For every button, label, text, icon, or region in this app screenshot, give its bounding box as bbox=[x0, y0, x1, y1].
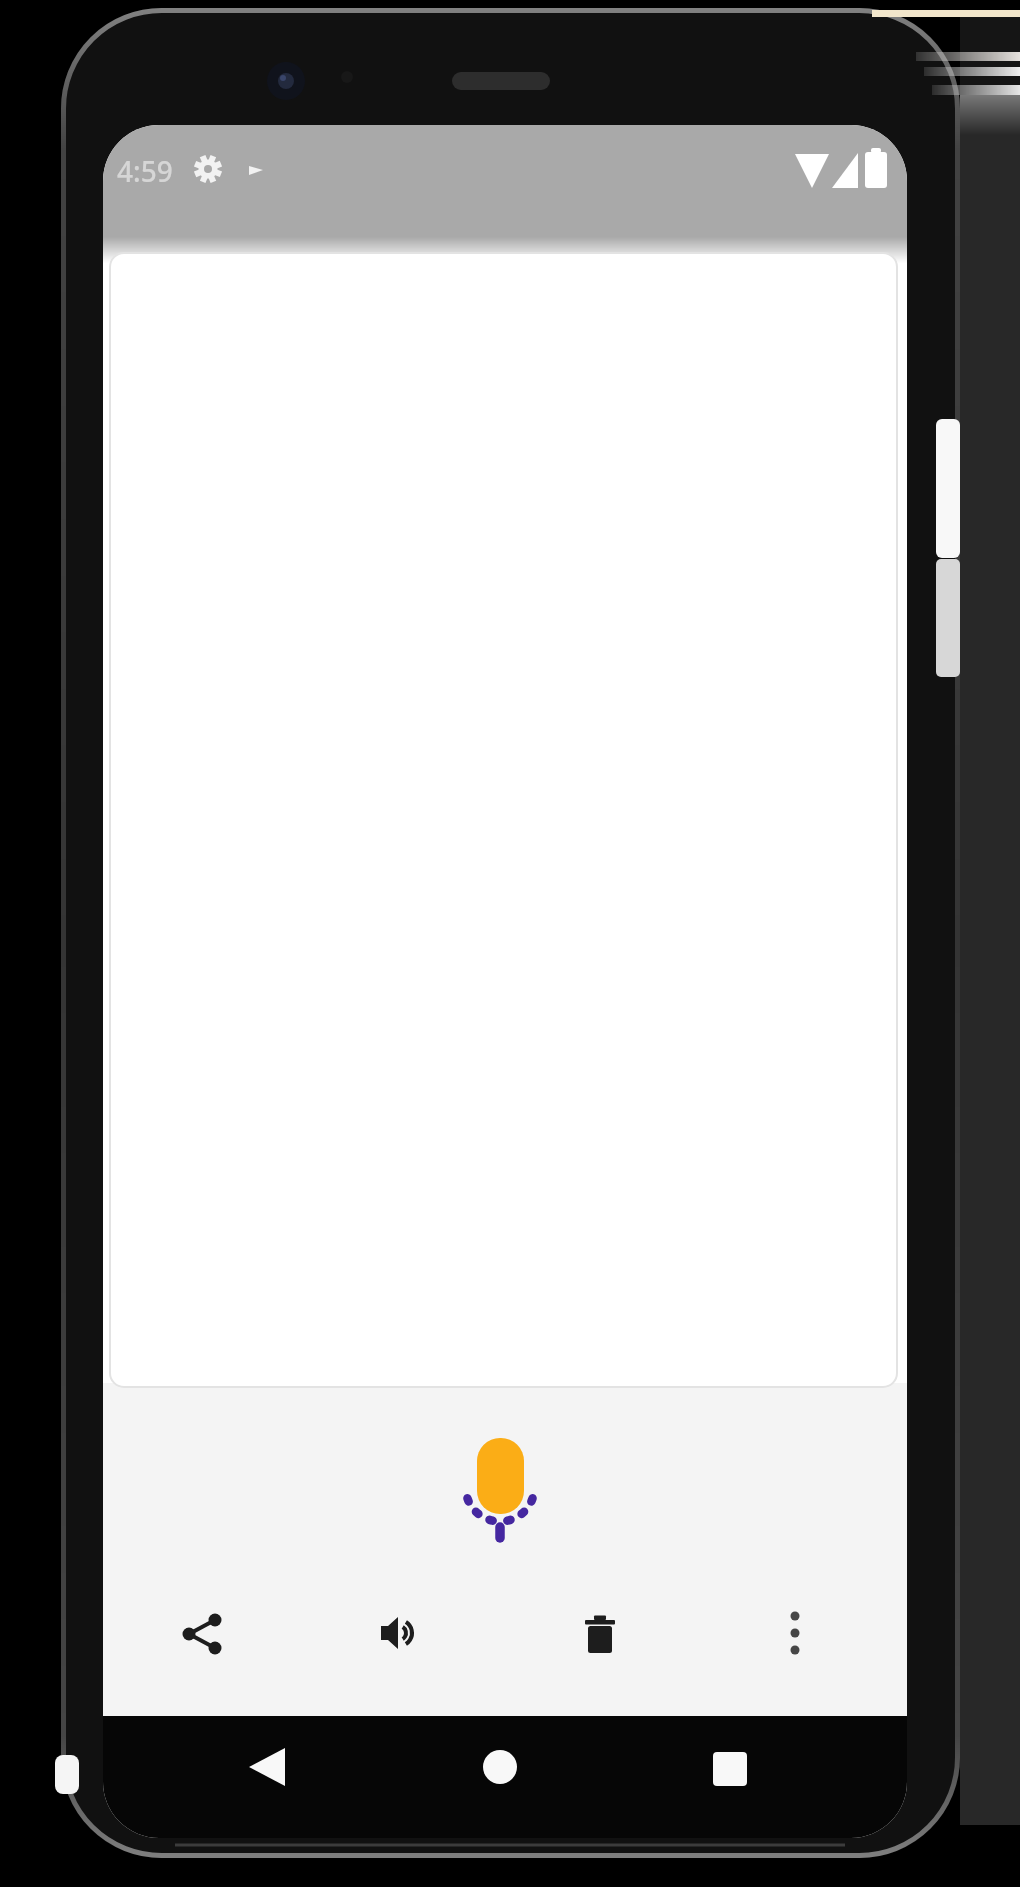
button[interactable] bbox=[755, 1593, 835, 1673]
button[interactable] bbox=[163, 1593, 243, 1673]
button[interactable] bbox=[440, 1420, 560, 1560]
staticText: 4:59 bbox=[117, 152, 173, 190]
button[interactable] bbox=[227, 1727, 307, 1807]
button[interactable] bbox=[690, 1729, 770, 1809]
button[interactable] bbox=[460, 1727, 540, 1807]
button[interactable] bbox=[359, 1593, 439, 1673]
button[interactable] bbox=[560, 1593, 640, 1673]
